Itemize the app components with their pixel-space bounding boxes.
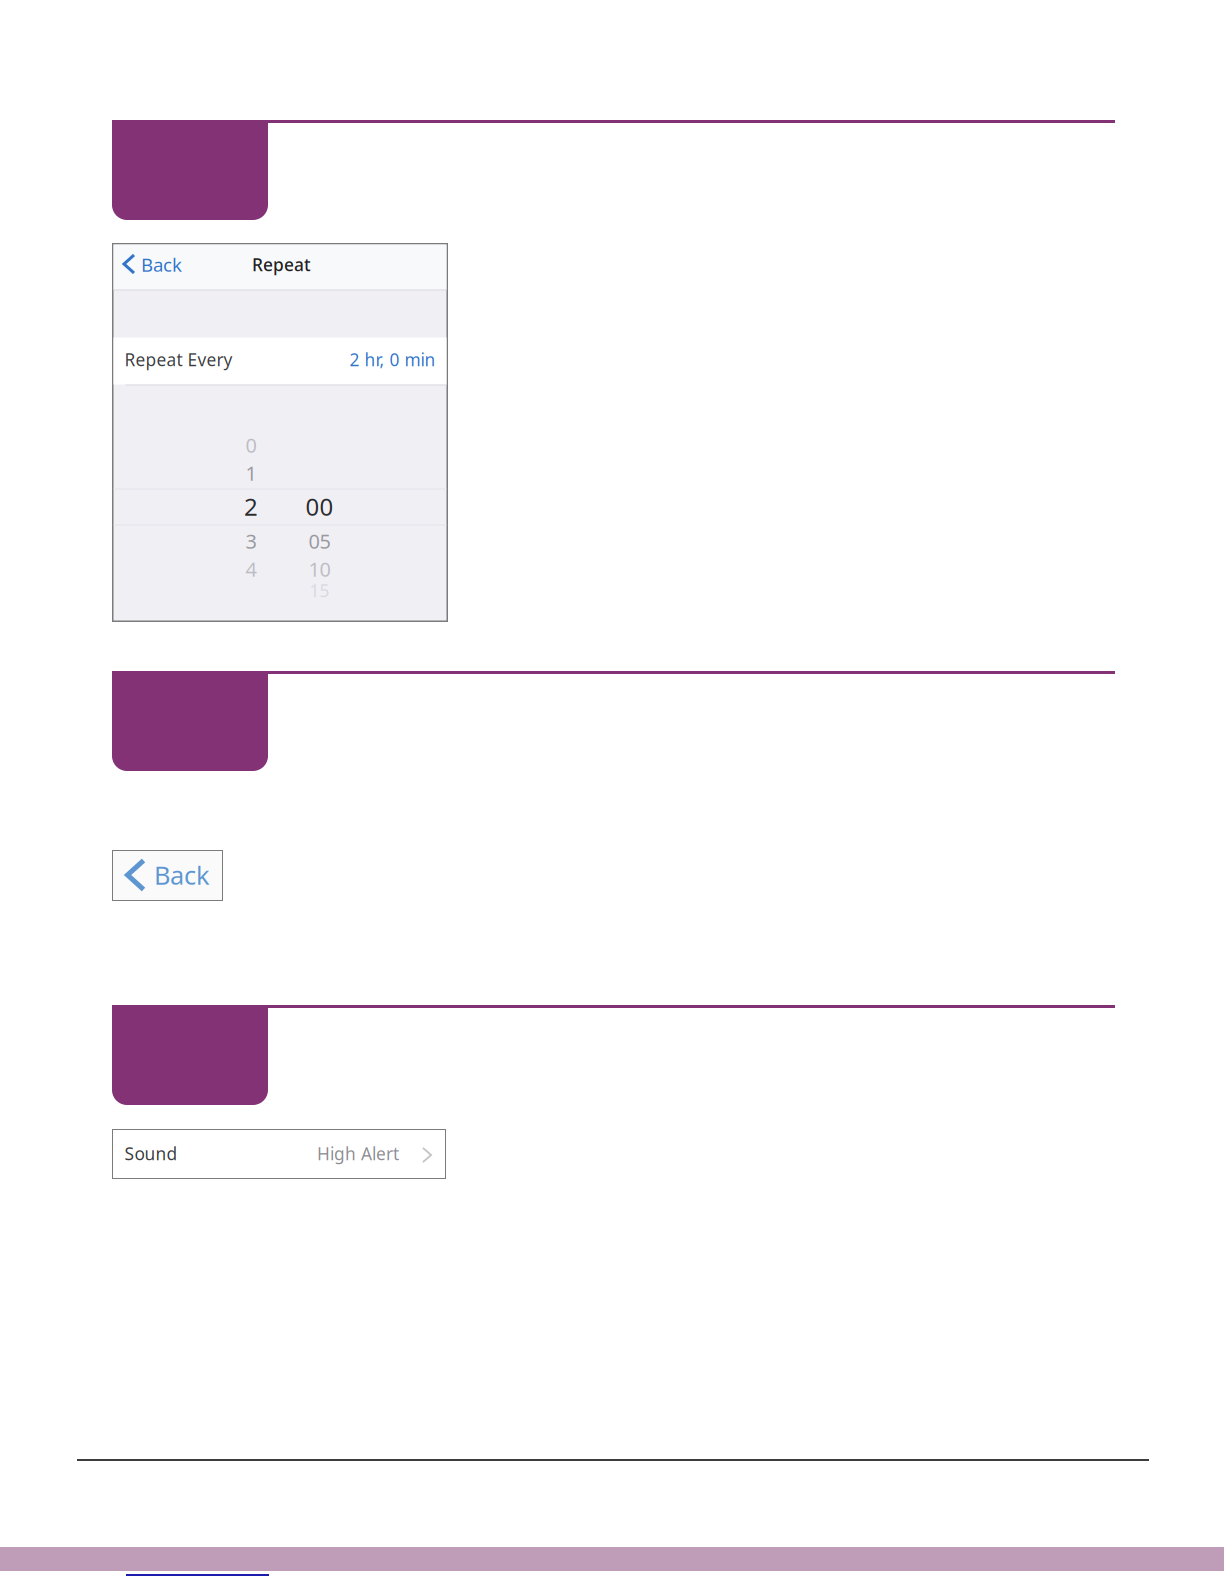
staticText: 4	[245, 556, 256, 582]
staticText: 00	[305, 491, 333, 522]
button[interactable]: Sound	[112, 1129, 446, 1179]
staticText: 0	[245, 432, 256, 458]
staticText: 1	[245, 460, 256, 486]
staticText: High Alert	[317, 1142, 399, 1165]
staticText: 2 hr, 0 min	[349, 348, 435, 371]
staticText: Repeat Every	[124, 348, 232, 371]
staticText: Back	[154, 858, 210, 892]
staticText: Sound	[124, 1142, 177, 1165]
staticText: Repeat	[252, 253, 311, 276]
button[interactable]: Back	[112, 850, 223, 901]
staticText: 10	[308, 556, 330, 582]
staticText: 15	[309, 579, 329, 602]
staticText: 3	[245, 528, 256, 554]
staticText: Back	[141, 252, 182, 277]
staticText: 2	[244, 491, 258, 522]
staticText: 05	[308, 528, 330, 554]
button[interactable]: Back	[113, 244, 185, 287]
